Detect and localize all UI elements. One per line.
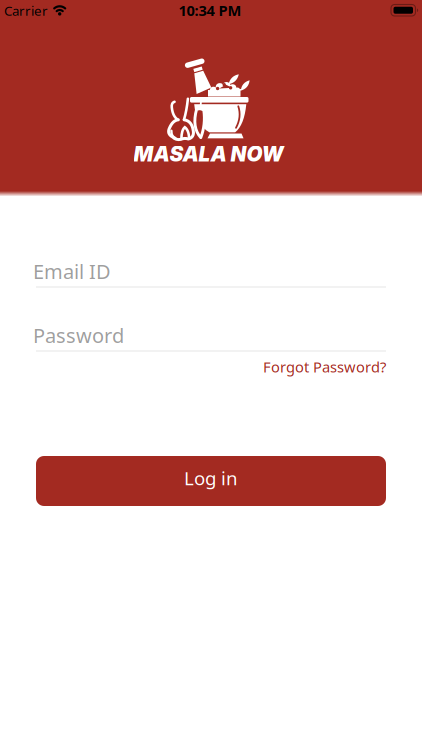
staticText: Forgot Password?	[263, 357, 386, 376]
button[interactable]: Password	[33, 322, 386, 352]
button[interactable]: Log in	[36, 456, 386, 506]
button[interactable]: Forgot Password?	[263, 357, 386, 376]
staticText: Log in	[184, 466, 238, 490]
button[interactable]: Email ID	[33, 258, 386, 288]
staticText: MASALA NOW	[133, 141, 283, 166]
staticText: Email ID	[33, 258, 111, 285]
staticText: Password	[33, 322, 124, 349]
staticText: 10:34 PM	[178, 0, 241, 20]
staticText: Carrier	[4, 2, 48, 19]
